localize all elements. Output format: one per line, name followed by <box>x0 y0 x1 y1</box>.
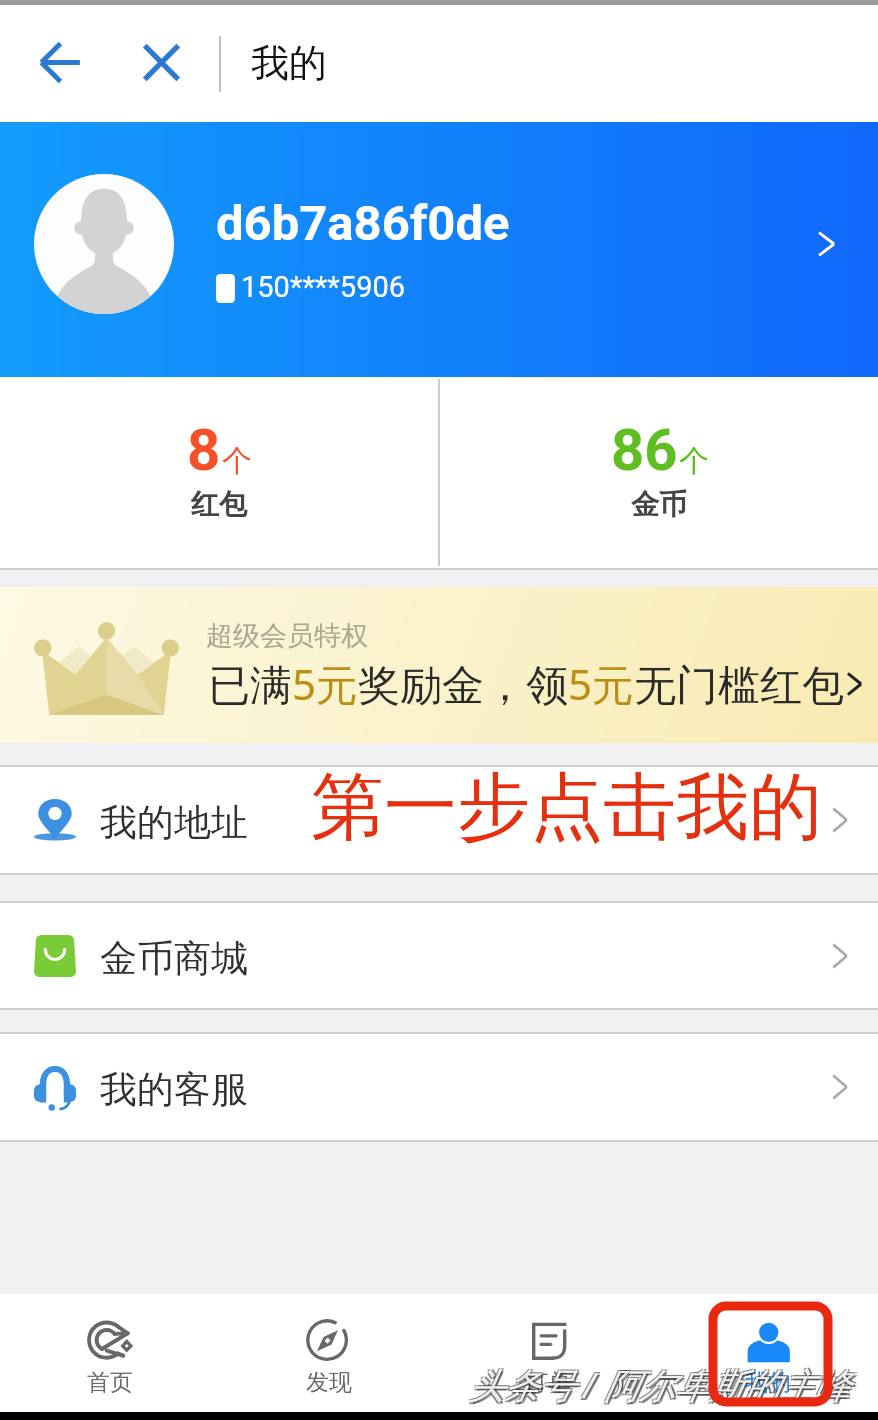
staticText: 头条号 / 阿尔卑斯的主峰 <box>471 1363 852 1411</box>
button[interactable]: 我的 <box>658 1294 878 1412</box>
staticText: 我的地址 <box>100 799 248 846</box>
staticText: 发现 <box>306 1368 352 1397</box>
button[interactable]: d6b7a86f0de <box>0 122 878 377</box>
staticText: 86 <box>611 416 678 484</box>
button[interactable]: 订单 <box>438 1294 658 1412</box>
staticText: 个 <box>222 442 252 480</box>
staticText: 头条号 / 阿尔卑斯的主峰 <box>471 1360 852 1408</box>
button[interactable]: 首页 <box>0 1294 219 1412</box>
button[interactable]: 发现 <box>219 1294 438 1412</box>
staticText: 第一步点击我的 <box>311 762 822 854</box>
staticText: 8 <box>187 416 221 484</box>
button[interactable]: 8 <box>0 377 438 568</box>
staticText: 超级会员特权 <box>206 619 368 653</box>
staticText: 我的 <box>745 1368 791 1397</box>
staticText: 已满5元奖励金，领5元无门槛红包 <box>208 655 845 712</box>
button[interactable]: Back <box>32 34 89 91</box>
staticText: 金币商城 <box>100 935 248 982</box>
staticText: 我的 <box>251 39 327 87</box>
staticText: 150****5906 <box>241 270 406 304</box>
staticText: 红包 <box>191 487 247 522</box>
staticText: 个 <box>679 442 709 480</box>
staticText: 头条号 / 阿尔卑斯的主峰 <box>468 1363 849 1411</box>
button[interactable]: Close <box>142 43 181 82</box>
button[interactable]: 金币商城 <box>0 903 878 1008</box>
staticText: 首页 <box>87 1368 133 1397</box>
staticText: 金币 <box>631 487 687 522</box>
button[interactable]: 我的客服 <box>0 1034 878 1140</box>
staticText: 头条号 / 阿尔卑斯的主峰 <box>469 1361 850 1409</box>
button[interactable]: 超级会员特权 <box>0 587 878 743</box>
button[interactable]: 86 <box>440 377 878 568</box>
button[interactable]: 我的地址 <box>0 767 878 873</box>
staticText: 订单 <box>525 1368 571 1397</box>
staticText: d6b7a86f0de <box>216 195 510 252</box>
staticText: 我的客服 <box>100 1066 248 1113</box>
staticText: 头条号 / 阿尔卑斯的主峰 <box>468 1360 849 1408</box>
